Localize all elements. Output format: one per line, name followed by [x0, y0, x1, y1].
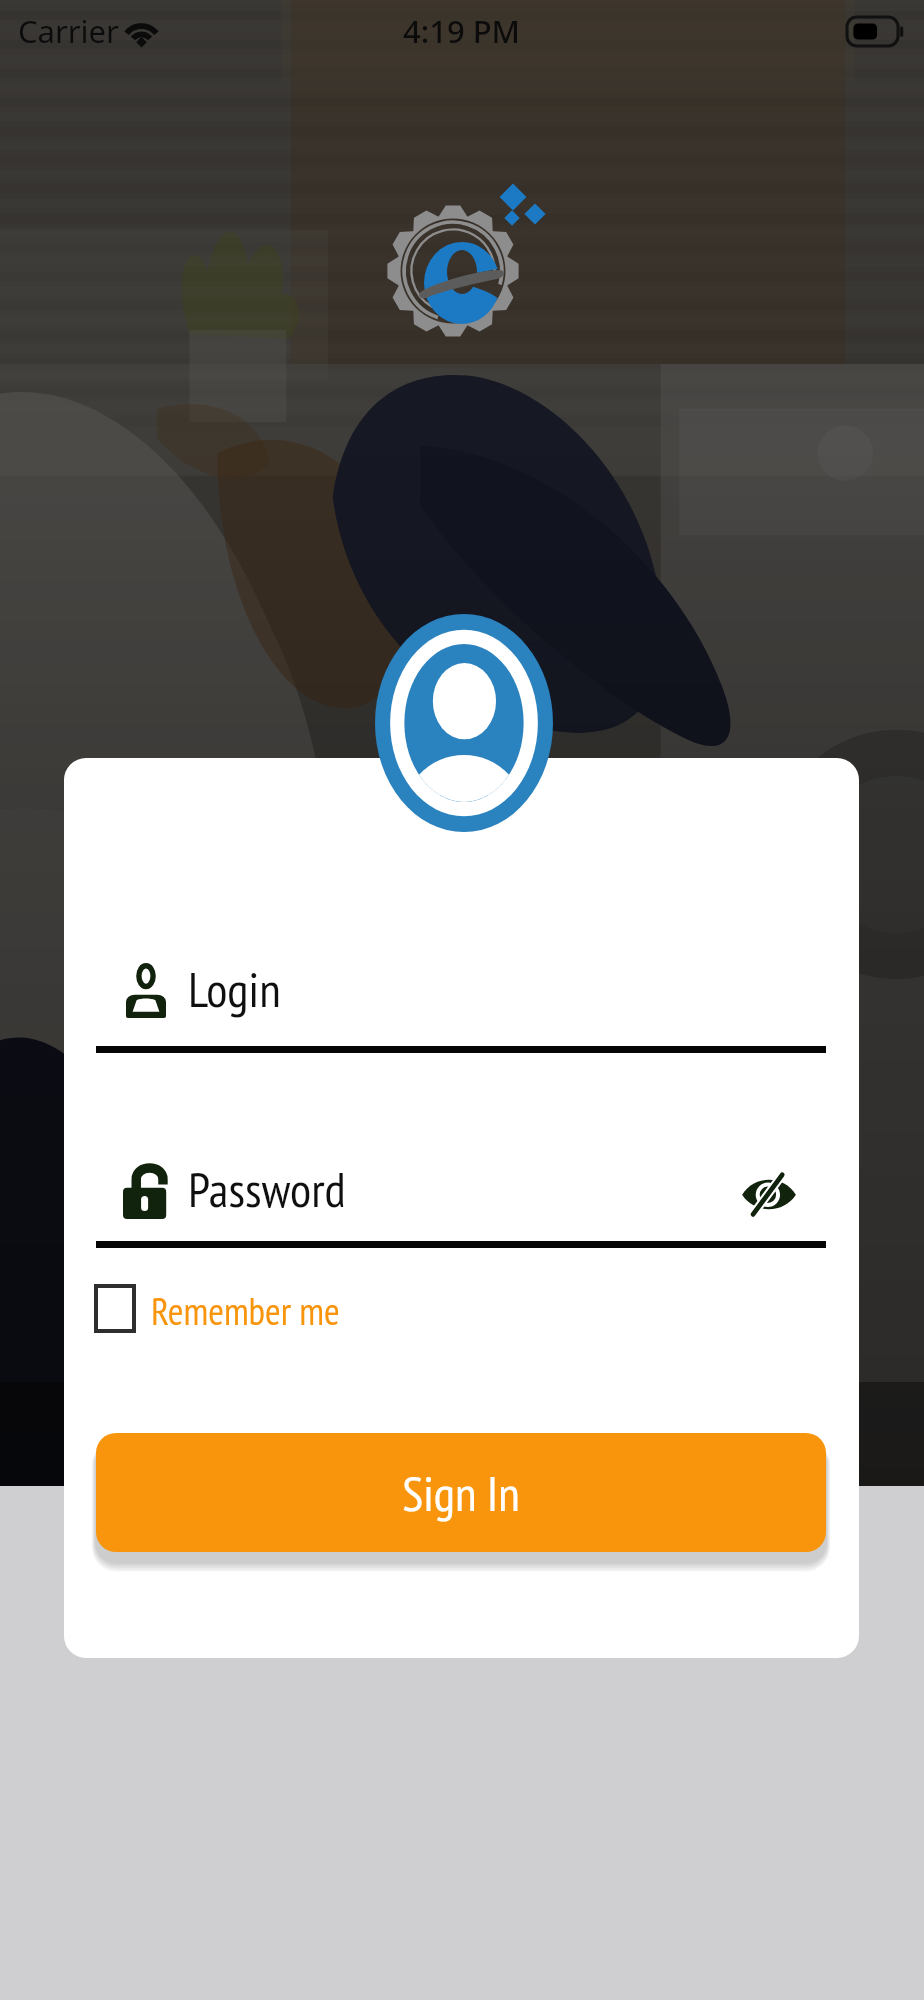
staticText: Carrier	[18, 10, 119, 52]
button[interactable]: Show password	[721, 1152, 817, 1236]
button[interactable]: Password	[64, 1148, 859, 1258]
staticText: Remember me	[151, 1286, 340, 1335]
button[interactable]: Remember me	[96, 1278, 340, 1338]
button[interactable]: Sign In	[96, 1433, 826, 1552]
button[interactable]: Login	[64, 948, 859, 1058]
staticText: Sign In	[402, 1461, 520, 1524]
staticText: 4:19 PM	[403, 10, 521, 52]
staticText: Login	[188, 957, 281, 1020]
staticText: Password	[188, 1157, 346, 1220]
